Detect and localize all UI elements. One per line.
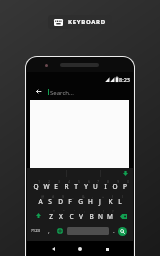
staticText: X bbox=[59, 212, 63, 221]
button[interactable]: Change language bbox=[57, 228, 63, 234]
staticText: 8 bbox=[107, 179, 110, 184]
staticText: KEYBOARD bbox=[68, 18, 106, 26]
staticText: J bbox=[99, 197, 101, 206]
button[interactable]: Period bbox=[109, 224, 119, 238]
staticText: ) bbox=[122, 194, 124, 199]
staticText: A bbox=[38, 197, 43, 206]
staticText: V bbox=[79, 212, 83, 221]
button[interactable]: V bbox=[76, 208, 86, 222]
staticText: - bbox=[92, 194, 94, 199]
staticText: ( bbox=[112, 194, 114, 199]
staticText: L bbox=[118, 197, 122, 206]
staticText: _ bbox=[72, 194, 74, 199]
staticText: 5 bbox=[78, 179, 81, 184]
staticText: H bbox=[88, 197, 93, 206]
staticText: ? bbox=[112, 209, 114, 214]
staticText: Q bbox=[33, 182, 39, 191]
staticText: P bbox=[123, 182, 127, 191]
button[interactable]: Back bbox=[32, 85, 45, 98]
staticText: D bbox=[58, 197, 63, 206]
staticText: C bbox=[69, 212, 74, 221]
button[interactable]: Back bbox=[45, 241, 61, 256]
staticText: 0 bbox=[127, 179, 130, 184]
staticText: 3 bbox=[58, 179, 61, 184]
staticText: M bbox=[107, 212, 113, 221]
staticText: & bbox=[82, 194, 85, 199]
button[interactable]: N bbox=[95, 208, 105, 222]
staticText: G bbox=[78, 197, 83, 206]
staticText: B bbox=[89, 212, 94, 221]
staticText: W bbox=[43, 182, 50, 191]
staticText: S bbox=[48, 197, 52, 206]
staticText: * bbox=[53, 209, 55, 214]
button[interactable]: Backspace bbox=[116, 209, 130, 223]
button[interactable]: W bbox=[41, 178, 51, 192]
staticText: 9 bbox=[117, 179, 120, 184]
button[interactable]: Home bbox=[72, 241, 88, 256]
staticText: Z bbox=[49, 212, 53, 221]
button[interactable]: S bbox=[45, 193, 55, 207]
button[interactable]: G bbox=[75, 193, 85, 207]
button[interactable]: T bbox=[71, 178, 81, 192]
button[interactable]: More suggestions bbox=[118, 168, 132, 179]
staticText: . bbox=[113, 226, 115, 235]
button[interactable]: A bbox=[35, 193, 45, 207]
button[interactable]: ?123 bbox=[29, 224, 43, 238]
button[interactable]: Y bbox=[81, 178, 91, 192]
button[interactable]: Search bbox=[118, 227, 127, 236]
staticText: 4 bbox=[68, 179, 71, 184]
staticText: ?123 bbox=[31, 228, 41, 234]
button[interactable]: Q bbox=[31, 178, 41, 192]
staticText: 6 bbox=[88, 179, 91, 184]
button[interactable]: J bbox=[95, 193, 105, 207]
button[interactable]: X bbox=[56, 208, 66, 222]
button[interactable]: U bbox=[90, 178, 100, 192]
button[interactable]: R bbox=[61, 178, 71, 192]
staticText: " bbox=[63, 209, 65, 214]
staticText: F bbox=[68, 197, 72, 206]
button[interactable]: Comma bbox=[44, 224, 54, 238]
button[interactable]: Z bbox=[46, 208, 56, 222]
button[interactable]: Recent apps bbox=[99, 241, 115, 256]
button[interactable]: O bbox=[110, 178, 120, 192]
button[interactable]: P bbox=[120, 178, 130, 192]
button[interactable]: D bbox=[55, 193, 65, 207]
staticText: ' bbox=[74, 209, 75, 214]
button[interactable]: B bbox=[86, 208, 96, 222]
button[interactable]: E bbox=[51, 178, 61, 192]
button[interactable]: M bbox=[105, 208, 115, 222]
button[interactable]: I bbox=[100, 178, 110, 192]
staticText: + bbox=[102, 194, 105, 199]
staticText: @ bbox=[41, 194, 45, 199]
staticText: $ bbox=[62, 194, 65, 199]
staticText: 2 bbox=[48, 179, 51, 184]
button[interactable]: Shift bbox=[31, 208, 45, 222]
staticText: : bbox=[84, 209, 85, 214]
staticText: 1 bbox=[38, 179, 41, 184]
button[interactable]: C bbox=[66, 208, 76, 222]
staticText: R bbox=[64, 182, 69, 191]
staticText: N bbox=[98, 212, 103, 221]
staticText: Y bbox=[84, 182, 88, 191]
button[interactable]: F bbox=[65, 193, 75, 207]
button[interactable]: K bbox=[105, 193, 115, 207]
staticText: Search... bbox=[50, 89, 74, 97]
staticText: 7 bbox=[97, 179, 100, 184]
staticText: O bbox=[112, 182, 118, 191]
button[interactable]: KEYBOARD bbox=[48, 15, 112, 29]
staticText: ! bbox=[103, 209, 104, 214]
button[interactable]: H bbox=[85, 193, 95, 207]
staticText: # bbox=[52, 194, 55, 199]
staticText: , bbox=[48, 226, 50, 235]
staticText: ; bbox=[94, 209, 95, 214]
staticText: U bbox=[93, 182, 98, 191]
staticText: K bbox=[108, 197, 113, 206]
staticText: T bbox=[74, 182, 78, 191]
staticText: I bbox=[104, 182, 107, 191]
staticText: E bbox=[54, 182, 58, 191]
staticText: 8:23 bbox=[119, 76, 130, 83]
button[interactable]: L bbox=[115, 193, 125, 207]
